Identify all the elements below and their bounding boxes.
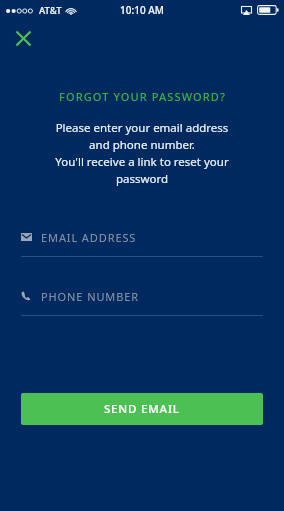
staticText: FORGOT YOUR PASSWORD? [59,89,226,104]
staticText: Please enter your email address and phon… [22,120,262,187]
button[interactable]: Email [21,225,263,257]
staticText: SEND EMAIL [104,401,180,417]
staticText: AT&T [39,4,62,17]
button[interactable]: Phone [21,284,263,316]
button[interactable]: SEND EMAIL [21,393,263,425]
button[interactable]: Close [9,24,37,52]
staticText: PHONE NUMBER [41,289,140,304]
staticText: EMAIL ADDRESS [41,230,137,245]
staticText: 10:10 AM [120,3,164,17]
